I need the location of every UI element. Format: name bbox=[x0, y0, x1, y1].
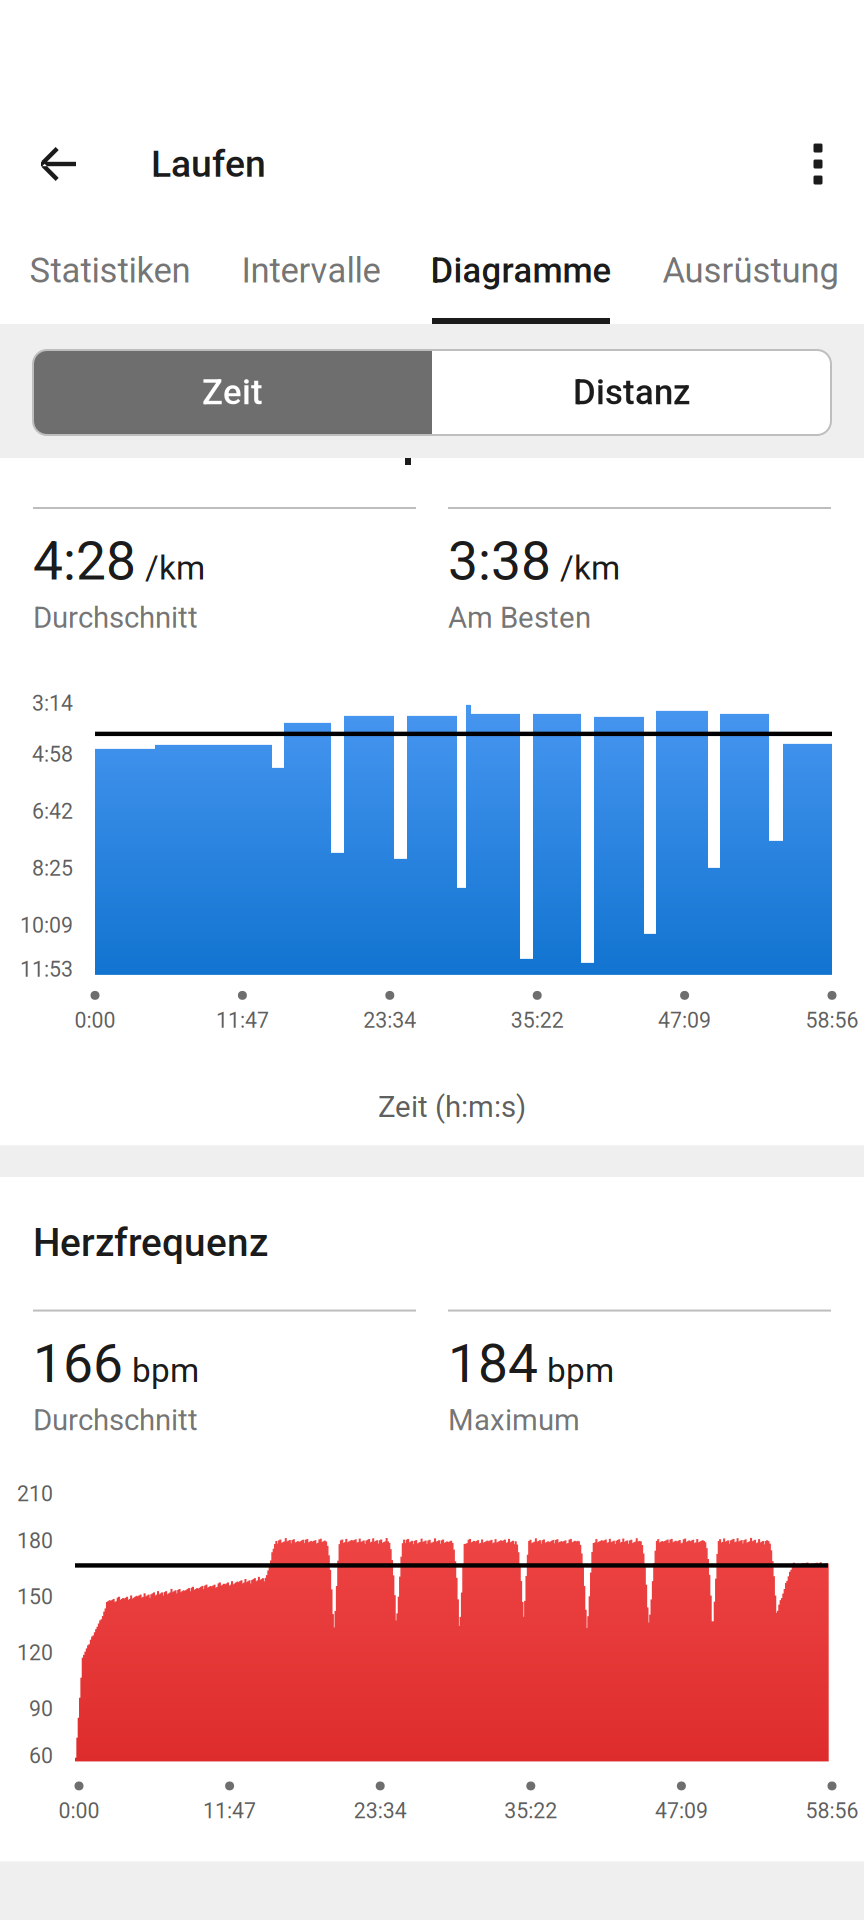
staticText: 35:22 bbox=[504, 1798, 557, 1823]
staticText: 58:56 bbox=[805, 1008, 858, 1033]
button[interactable]: Zurück bbox=[20, 120, 96, 208]
staticText: Diagramme bbox=[430, 250, 611, 291]
staticText: 3:14 bbox=[32, 691, 73, 716]
staticText: Durchschnitt bbox=[33, 600, 198, 635]
button[interactable]: Weitere Optionen bbox=[780, 120, 856, 208]
staticText: 4:28 bbox=[33, 530, 136, 592]
staticText: 47:09 bbox=[655, 1798, 708, 1823]
staticText: 180 bbox=[17, 1528, 53, 1553]
staticText: 35:22 bbox=[511, 1008, 564, 1033]
staticText: 0:00 bbox=[58, 1798, 99, 1823]
staticText: 47:09 bbox=[658, 1008, 711, 1033]
staticText: 6:42 bbox=[32, 799, 73, 824]
button[interactable]: Diagramme bbox=[406, 208, 636, 324]
staticText: 8:25 bbox=[32, 856, 73, 881]
staticText: /km bbox=[560, 549, 620, 588]
staticText: Ausrüstung bbox=[662, 250, 838, 291]
staticText: Laufen bbox=[151, 142, 266, 186]
staticText: bpm bbox=[547, 1351, 614, 1390]
staticText: bpm bbox=[132, 1351, 199, 1390]
staticText: Statistiken bbox=[29, 250, 190, 291]
staticText: Maximum bbox=[448, 1403, 580, 1437]
staticText: 3:38 bbox=[448, 530, 551, 592]
staticText: 23:34 bbox=[363, 1008, 416, 1033]
button[interactable]: Statistiken bbox=[4, 208, 216, 324]
staticText: /km bbox=[145, 549, 205, 588]
staticText: 120 bbox=[17, 1640, 53, 1665]
staticText: Intervalle bbox=[241, 250, 380, 291]
staticText: 11:53 bbox=[20, 957, 73, 982]
staticText: 60 bbox=[29, 1743, 53, 1768]
staticText: Herzfrequenz bbox=[33, 1220, 268, 1265]
staticText: Distanz bbox=[573, 372, 690, 413]
button[interactable]: Distanz bbox=[432, 350, 831, 435]
staticText: 11:47 bbox=[203, 1798, 256, 1823]
staticText: 184 bbox=[448, 1333, 538, 1395]
staticText: Am Besten bbox=[448, 600, 591, 635]
staticText: 23:34 bbox=[354, 1798, 407, 1823]
staticText: 150 bbox=[17, 1584, 53, 1609]
staticText: 90 bbox=[29, 1696, 53, 1721]
staticText: Zeit (h:m:s) bbox=[378, 1090, 526, 1124]
button[interactable]: Ausrüstung bbox=[636, 208, 864, 324]
staticText: 210 bbox=[17, 1481, 53, 1506]
staticText: 58:56 bbox=[805, 1798, 858, 1823]
button[interactable]: Zeit bbox=[33, 350, 432, 435]
staticText: Durchschnitt bbox=[33, 1403, 198, 1437]
staticText: 10:09 bbox=[20, 913, 73, 938]
staticText: 0:00 bbox=[74, 1008, 115, 1033]
button[interactable]: Intervalle bbox=[216, 208, 406, 324]
staticText: 11:47 bbox=[216, 1008, 269, 1033]
staticText: Zeit bbox=[202, 372, 263, 413]
staticText: 166 bbox=[33, 1333, 123, 1395]
staticText: 4:58 bbox=[32, 742, 73, 767]
